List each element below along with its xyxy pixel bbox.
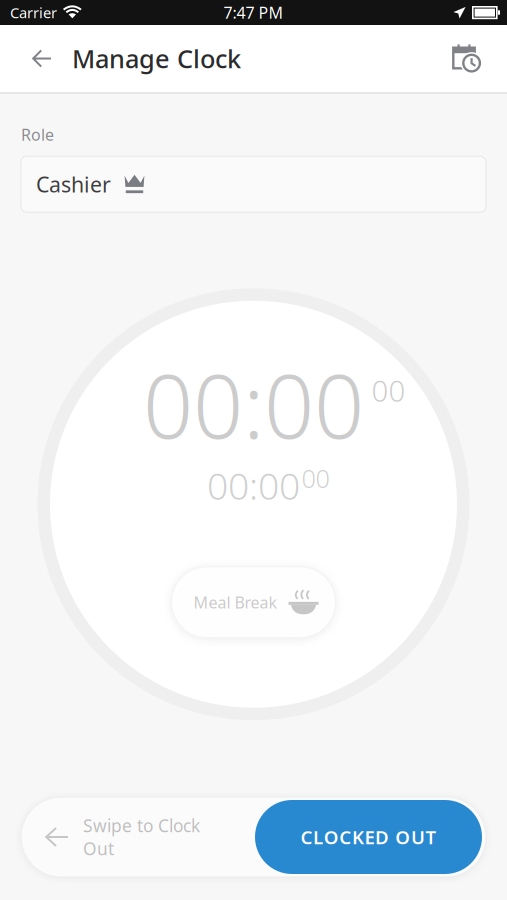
staticText: Cashier (36, 170, 111, 198)
staticText: 00:00 (207, 460, 300, 510)
staticText: Swipe to Clock Out (83, 814, 200, 860)
button[interactable]: Back (20, 34, 64, 82)
staticText: CLOCKED OUT (300, 825, 436, 849)
button[interactable]: Time cards (445, 34, 489, 82)
staticText: Role (21, 124, 54, 145)
staticText: 7:47 PM (223, 2, 283, 23)
button[interactable]: Meal Break (171, 567, 335, 638)
button[interactable]: Cashier (21, 156, 486, 212)
staticText: 00 (371, 371, 405, 410)
staticText: Manage Clock (72, 42, 241, 75)
staticText: Carrier (10, 3, 57, 22)
staticText: 00:00 (143, 346, 364, 463)
staticText: 00 (301, 461, 329, 495)
staticText: Meal Break (193, 592, 277, 613)
button[interactable]: CLOCKED OUT (255, 800, 482, 874)
